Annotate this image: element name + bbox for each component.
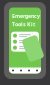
staticText: Tools Kit xyxy=(12,21,35,28)
staticText: Emergency xyxy=(12,12,40,20)
